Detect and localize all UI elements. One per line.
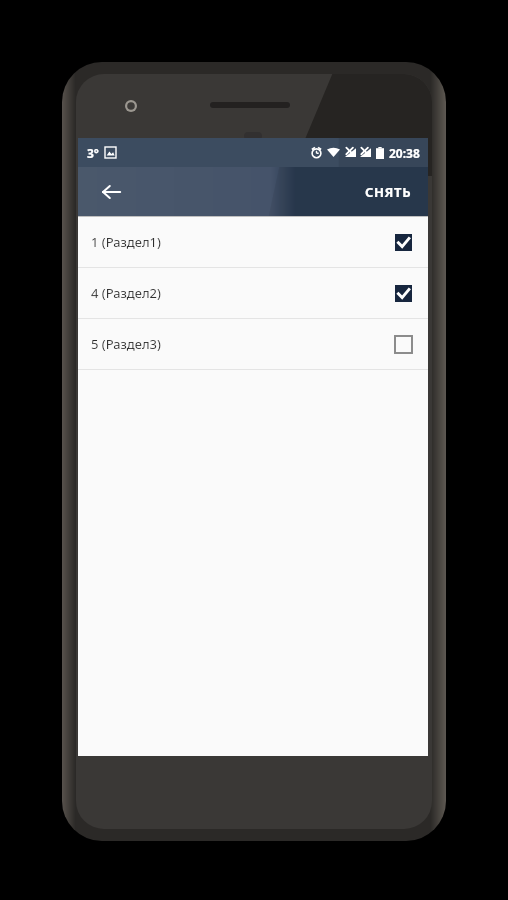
- staticText: 1 (Раздел1): [91, 233, 161, 251]
- button[interactable]: СНЯТЬ: [355, 175, 422, 209]
- staticText: СНЯТЬ: [365, 183, 412, 201]
- staticText: 20:38: [389, 145, 420, 161]
- button[interactable]: 5 (Раздел3): [78, 319, 428, 369]
- button[interactable]: 1 (Раздел1): [78, 217, 428, 267]
- staticText: 4 (Раздел2): [91, 284, 161, 302]
- staticText: 5 (Раздел3): [91, 335, 161, 353]
- button[interactable]: Back: [94, 175, 128, 209]
- button[interactable]: 4 (Раздел2): [78, 268, 428, 318]
- staticText: 3°: [87, 145, 99, 161]
